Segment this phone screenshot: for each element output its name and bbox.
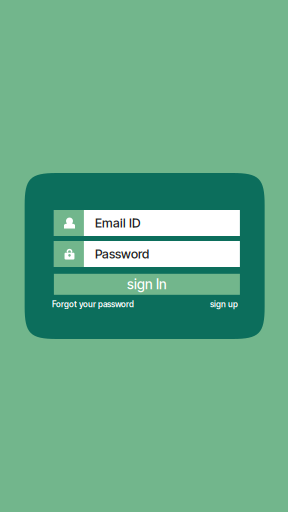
staticText: Email ID <box>95 215 141 231</box>
button[interactable]: sign In <box>54 274 240 295</box>
button[interactable]: Forgot your password <box>52 299 134 309</box>
staticText: sign up <box>210 299 238 309</box>
staticText: Password <box>95 246 149 262</box>
staticText: sign In <box>127 276 167 293</box>
staticText: Forgot your password <box>52 299 134 309</box>
button[interactable]: Email ID <box>54 210 240 236</box>
button[interactable]: sign up <box>210 299 238 309</box>
button[interactable]: Password <box>54 241 240 267</box>
